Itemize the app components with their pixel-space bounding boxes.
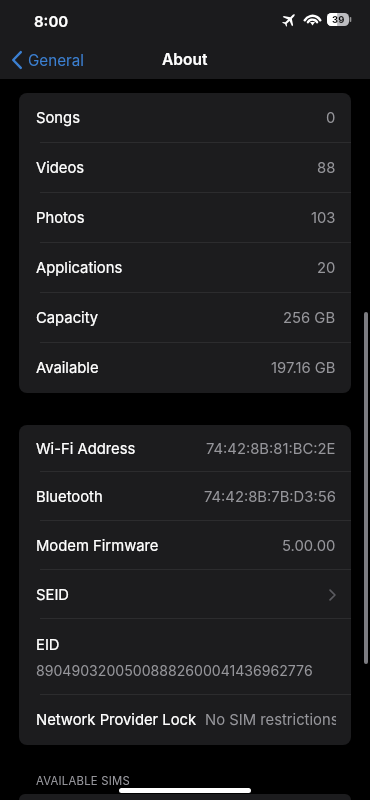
button[interactable]: Applications	[19, 243, 351, 293]
button[interactable]: Capacity	[19, 293, 351, 343]
staticText: No SIM restrictions	[205, 711, 336, 729]
staticText: 89049032005008882600041436962776	[36, 662, 313, 679]
staticText: 0	[326, 109, 336, 127]
button[interactable]: Videos	[19, 143, 351, 193]
staticText: 74:42:8B:81:BC:2E	[206, 440, 336, 458]
staticText: SEID	[36, 586, 70, 604]
other: Wi-Fi	[305, 13, 320, 26]
staticText: Bluetooth	[36, 488, 103, 506]
staticText: 88	[317, 159, 336, 177]
staticText: 256 GB	[283, 309, 336, 327]
staticText: Applications	[36, 259, 123, 277]
staticText: 5.00.00	[282, 537, 336, 555]
staticText: Videos	[36, 159, 85, 177]
button[interactable]: Songs	[19, 93, 351, 143]
staticText: EID	[36, 636, 60, 654]
staticText: 74:42:8B:7B:D3:56	[204, 488, 336, 506]
staticText: AVAILABLE SIMS	[36, 774, 131, 788]
button[interactable]: Photos	[19, 193, 351, 243]
staticText: 39	[332, 14, 345, 25]
staticText: Modem Firmware	[36, 537, 159, 555]
button[interactable]: Available	[19, 343, 351, 393]
button[interactable]: EID	[19, 619, 351, 695]
staticText: Songs	[36, 109, 80, 127]
staticText: 8:00	[34, 12, 69, 30]
staticText: Available	[36, 359, 99, 377]
button[interactable]: Bluetooth	[19, 472, 351, 521]
button[interactable]: General	[0, 40, 92, 79]
staticText: 197.16 GB	[271, 359, 336, 377]
staticText: Capacity	[36, 309, 99, 327]
button[interactable]: Wi-Fi Address	[19, 425, 351, 472]
staticText: Wi-Fi Address	[36, 440, 136, 458]
staticText: Photos	[36, 209, 85, 227]
staticText: Network Provider Lock	[36, 711, 197, 729]
other: Airplane mode	[284, 12, 295, 27]
button[interactable]: Modem Firmware	[19, 521, 351, 570]
staticText: General	[28, 51, 84, 69]
staticText: 20	[317, 259, 336, 277]
button[interactable]: Network Provider Lock	[19, 695, 351, 745]
staticText: 103	[311, 209, 336, 227]
staticText: About	[162, 50, 208, 69]
button[interactable]: SEID	[19, 570, 351, 619]
